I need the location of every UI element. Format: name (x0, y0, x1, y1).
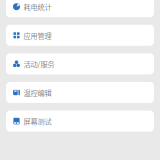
staticText: 耗电统计 (24, 1, 52, 12)
staticText: 温控编辑 (24, 87, 52, 98)
button[interactable]: 耗电统计 (6, 0, 154, 17)
button[interactable]: 屏幕测试 (6, 111, 154, 132)
button[interactable]: 温控编辑 (6, 82, 154, 103)
staticText: 屏幕测试 (24, 116, 52, 126)
staticText: 应用管理 (24, 30, 52, 40)
button[interactable]: 应用管理 (6, 25, 154, 46)
button[interactable]: 活动/服务 (6, 53, 154, 74)
staticText: 活动/服务 (24, 59, 55, 69)
